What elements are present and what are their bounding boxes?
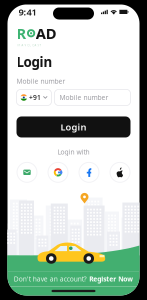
staticText: R xyxy=(16,23,26,43)
button[interactable]: Login xyxy=(16,116,130,137)
staticText: Don't have an account? xyxy=(14,275,87,283)
button[interactable]: Mobile number xyxy=(54,89,130,105)
button[interactable]: Login with Facebook xyxy=(79,162,99,182)
staticText: AD xyxy=(36,23,57,43)
button[interactable]: Don't have an account? xyxy=(7,271,139,286)
button[interactable]: +91 xyxy=(16,89,51,105)
staticText: Mobile number xyxy=(59,93,108,102)
staticText: Register Now xyxy=(89,275,133,283)
button[interactable]: Login with Apple xyxy=(110,162,130,182)
staticText: T R A V E L E A S Y xyxy=(16,43,41,47)
staticText: Login xyxy=(60,121,86,133)
button[interactable]: Login with Google xyxy=(48,162,68,182)
staticText: +91 xyxy=(29,93,41,102)
staticText: Mobile number xyxy=(16,77,65,85)
staticText: Login with xyxy=(57,147,89,156)
staticText: 9:41 xyxy=(18,6,36,18)
staticText: Login xyxy=(16,53,52,71)
button[interactable]: Login with email xyxy=(17,162,37,182)
